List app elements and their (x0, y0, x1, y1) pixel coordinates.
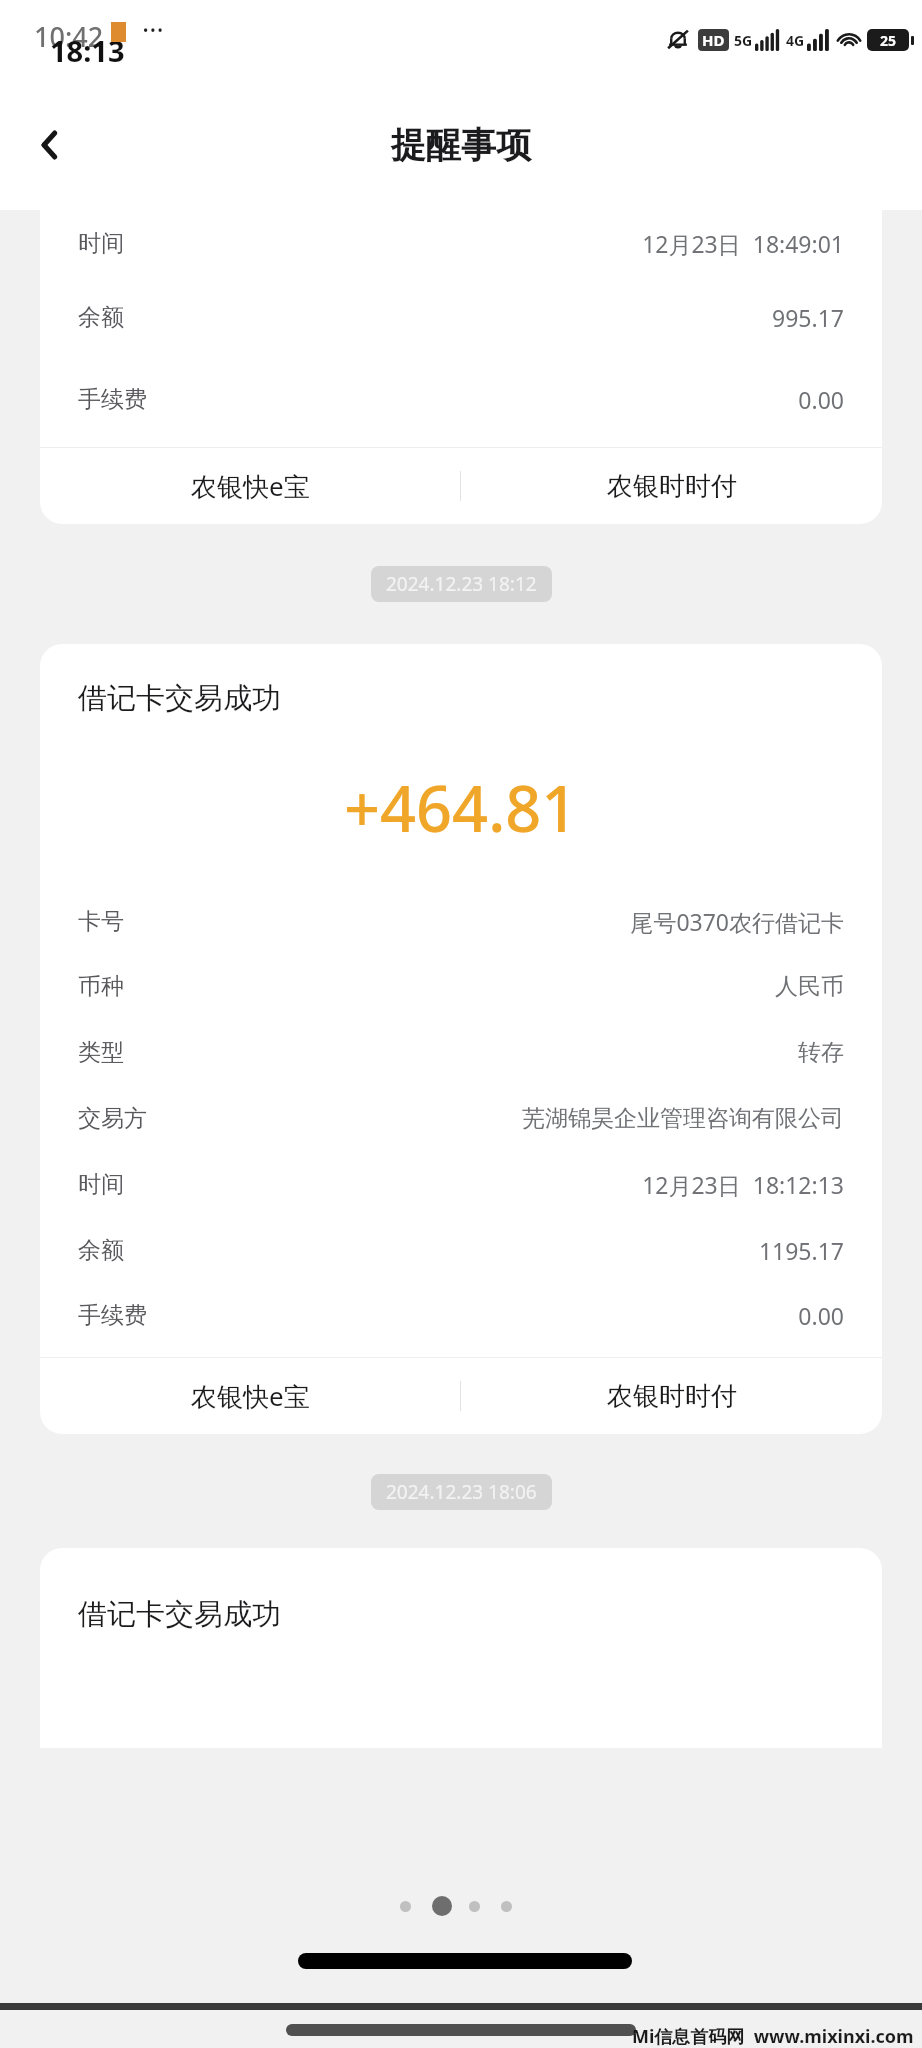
staticText: 2024.12.23 18:12 (386, 571, 537, 597)
staticText: 12月23日 18:49:01 (134, 228, 844, 259)
staticText: ··· (142, 11, 164, 48)
staticText: 手续费 (78, 385, 147, 414)
staticText: 0.00 (157, 384, 844, 415)
staticText: 借记卡交易成功 (78, 1596, 281, 1633)
staticText: 余额 (78, 1236, 124, 1265)
staticText: 手续费 (78, 1301, 147, 1330)
staticText: 农银快e宝 (191, 468, 310, 504)
staticText: 卡号 (78, 907, 124, 936)
staticText: 10:42 (34, 18, 104, 55)
button[interactable]: 农银时时付 (461, 448, 882, 524)
button[interactable]: 农银时时付 (461, 1358, 882, 1434)
staticText: 提醒事项 (391, 123, 531, 167)
staticText: 农银快e宝 (191, 1378, 310, 1414)
staticText: 时间 (78, 229, 124, 258)
staticText: 类型 (78, 1038, 124, 1067)
staticText: +464.81 (344, 765, 578, 851)
staticText: 25 (880, 31, 897, 50)
staticText: 余额 (78, 303, 124, 332)
staticText: Mi信息首码网 www.mixinxi.com (632, 2024, 914, 2048)
staticText: 12月23日 18:12:13 (134, 1169, 844, 1200)
staticText: 2024.12.23 18:06 (386, 1479, 537, 1505)
staticText: 借记卡交易成功 (78, 680, 281, 717)
staticText: 尾号0370农行借记卡 (134, 906, 844, 937)
staticText: 4G (786, 31, 805, 50)
staticText: 5G (734, 31, 753, 50)
staticText: 时间 (78, 1170, 124, 1199)
staticText: 1195.17 (134, 1235, 844, 1266)
button[interactable]: 农银快e宝 (40, 1358, 460, 1434)
staticText: 币种 (78, 972, 124, 1001)
staticText: 农银时时付 (607, 1380, 737, 1413)
staticText: HD (702, 30, 725, 50)
staticText: 交易方 (78, 1104, 147, 1133)
staticText: 18:13 (50, 31, 125, 70)
staticText: 农银时时付 (607, 470, 737, 503)
staticText: 人民币 (134, 972, 844, 1001)
staticText: 芜湖锦昊企业管理咨询有限公司 (157, 1104, 844, 1133)
staticText: 转存 (134, 1038, 844, 1067)
button[interactable]: Back (18, 113, 82, 177)
staticText: 995.17 (134, 302, 844, 333)
button[interactable]: 农银快e宝 (40, 448, 460, 524)
staticText: 0.00 (157, 1300, 844, 1331)
